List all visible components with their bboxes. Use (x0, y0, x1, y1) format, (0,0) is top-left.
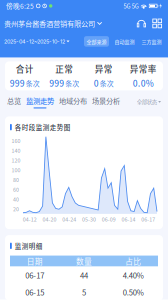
staticText: 傍晚6:25 (6, 1, 34, 11)
staticText: 05-30 (82, 215, 96, 223)
button[interactable]: 2025-04-12~2025-10-12 (4, 36, 69, 47)
staticText: 监测明细 (15, 241, 43, 251)
staticText: 全部状态 (137, 98, 157, 106)
staticText: 自动监测 (114, 38, 134, 45)
staticText: 条次 (26, 78, 40, 88)
staticText: 三方监测 (141, 38, 161, 45)
staticText: 06-15 (25, 286, 44, 298)
staticText: 5G (123, 2, 130, 10)
staticText: 场景分析 (92, 95, 120, 106)
staticText: 06-17 (141, 215, 155, 223)
staticText: 占比 (125, 255, 141, 267)
button[interactable]: 客服 (136, 18, 146, 28)
staticText: 06-14 (121, 215, 135, 223)
staticText: 全部来源 (86, 38, 106, 45)
staticText: 监测走势 (26, 95, 54, 106)
staticText: 20 (13, 205, 19, 213)
staticText: 0.0% (133, 77, 154, 89)
staticText: 异常率 (130, 63, 157, 75)
button[interactable]: 全部状态 (137, 96, 161, 108)
staticText: 5G (132, 2, 139, 10)
staticText: 0.50% (123, 286, 144, 298)
staticText: 2025-04-12~2025-10-12 (4, 38, 65, 45)
staticText: 06-09 (102, 215, 116, 223)
staticText: 日期 (27, 255, 43, 267)
staticText: 80 (13, 176, 19, 184)
staticText: 999 (10, 77, 25, 89)
staticText: 0 (94, 77, 99, 89)
staticText: 999 (49, 77, 64, 89)
staticText: 地域分布 (59, 95, 87, 106)
staticText: 条次 (100, 78, 114, 88)
button[interactable]: 监测走势 (26, 95, 54, 108)
staticText: 44 (80, 269, 88, 281)
staticText: 40 (13, 195, 19, 203)
staticText: 04-20 (43, 215, 57, 223)
staticText: 总览 (7, 95, 21, 106)
button[interactable]: 地域分布 (59, 95, 87, 108)
staticText: 各时段监测走势图 (15, 122, 71, 132)
button[interactable]: 场景分析 (92, 95, 120, 108)
staticText: 06-17 (25, 269, 44, 281)
staticText: 贵州茅台酱香酒营销有限公司 (4, 18, 95, 29)
staticText: 4.40% (123, 269, 144, 281)
button[interactable]: 三方监测 (139, 36, 164, 47)
staticText: 合计 (16, 63, 34, 75)
button[interactable]: 更多功能 (152, 19, 162, 28)
staticText: 160 (11, 137, 20, 145)
staticText: 100 (11, 166, 20, 174)
staticText: 异常 (95, 63, 113, 75)
button[interactable]: 自动监测 (112, 36, 137, 47)
staticText: 正常 (55, 63, 73, 75)
staticText: 5 (82, 286, 86, 298)
staticText: 04-24 (62, 215, 76, 223)
staticText: 120 (11, 156, 20, 164)
staticText: 60 (13, 186, 19, 193)
button[interactable]: 全部来源 (84, 36, 109, 47)
button[interactable]: 总览 (7, 95, 21, 108)
button[interactable]: 贵州茅台酱香酒营销有限公司 (4, 17, 102, 30)
staticText: 数量 (76, 255, 92, 267)
staticText: 140 (11, 147, 20, 154)
staticText: 条次 (65, 78, 79, 88)
staticText: 04-12 (23, 215, 37, 223)
